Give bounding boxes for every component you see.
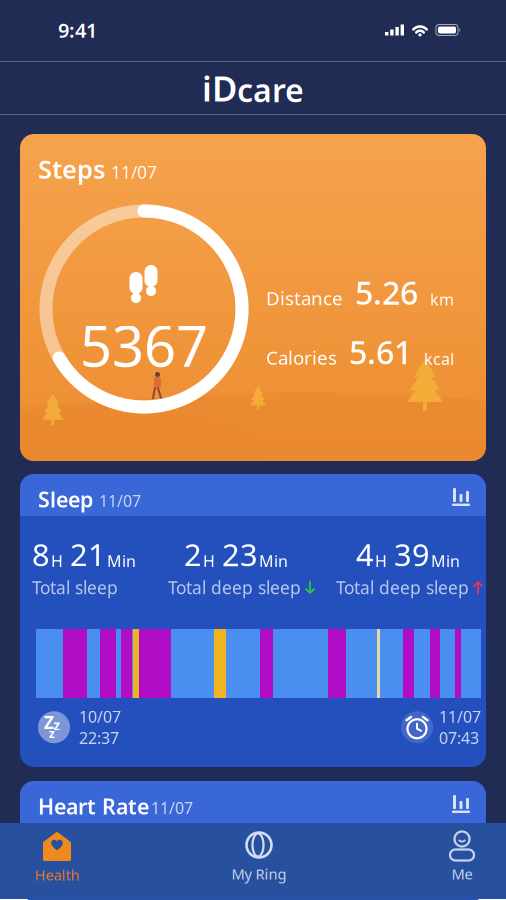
staticText: 11/07 bbox=[439, 706, 481, 727]
staticText: 8 bbox=[32, 534, 50, 575]
staticText: Total deep sleep bbox=[168, 576, 301, 599]
staticText: Steps bbox=[38, 152, 105, 186]
staticText: 23 bbox=[222, 534, 258, 575]
staticText: Min bbox=[431, 550, 460, 572]
staticText: 5.61 bbox=[349, 330, 412, 373]
staticText: Total deep sleep bbox=[336, 576, 469, 599]
staticText: kcal bbox=[424, 348, 454, 369]
staticText: H bbox=[203, 550, 215, 572]
staticText: 2 bbox=[184, 534, 202, 575]
staticText: Calories bbox=[266, 345, 337, 370]
staticText: 07:43 bbox=[439, 727, 479, 748]
staticText: z bbox=[49, 725, 55, 741]
staticText: 10/07 bbox=[79, 706, 121, 727]
staticText: care bbox=[237, 68, 304, 111]
staticText: 11/07 bbox=[151, 797, 193, 818]
staticText: Min bbox=[259, 550, 288, 572]
staticText: Total sleep bbox=[32, 576, 118, 599]
staticText: Z bbox=[44, 711, 54, 734]
staticText: Heart Rate bbox=[38, 792, 149, 820]
staticText: Health bbox=[34, 865, 79, 884]
staticText: km bbox=[430, 289, 454, 310]
staticText: z bbox=[53, 716, 60, 734]
staticText: 5.26 bbox=[355, 271, 418, 313]
staticText: Distance bbox=[266, 286, 343, 310]
staticText: iD bbox=[202, 65, 237, 111]
staticText: 4 bbox=[356, 534, 374, 575]
staticText: 22:37 bbox=[79, 727, 119, 748]
staticText: Me bbox=[451, 864, 472, 883]
staticText: 39 bbox=[394, 534, 430, 575]
staticText: H bbox=[375, 550, 387, 572]
staticText: 5367 bbox=[80, 308, 208, 382]
staticText: Sleep bbox=[38, 485, 93, 513]
staticText: Min bbox=[107, 550, 136, 572]
staticText: 11/07 bbox=[99, 490, 141, 511]
staticText: 11/07 bbox=[111, 161, 157, 184]
staticText: H bbox=[51, 550, 63, 572]
staticText: 21 bbox=[70, 534, 106, 575]
staticText: My Ring bbox=[231, 864, 286, 883]
staticText: 9:41 bbox=[58, 17, 97, 43]
